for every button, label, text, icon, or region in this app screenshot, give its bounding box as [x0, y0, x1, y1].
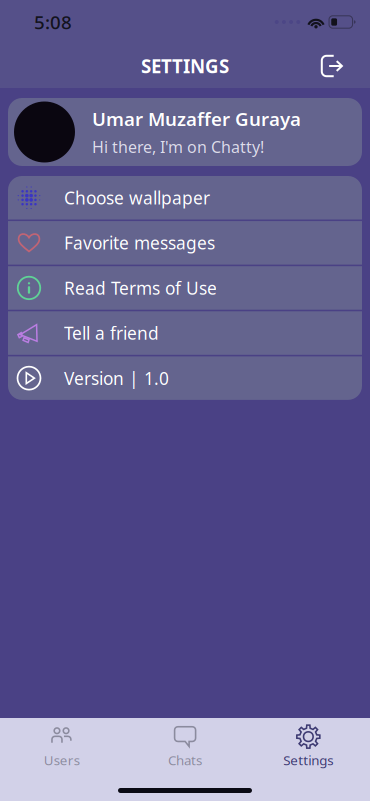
- staticText: SETTINGS: [141, 54, 229, 78]
- staticText: Umar Muzaffer Guraya: [92, 106, 301, 131]
- staticText: Favorite messages: [64, 231, 215, 254]
- staticText: Read Terms of Use: [64, 276, 217, 299]
- button[interactable]: Choose wallpaper: [8, 176, 362, 219]
- button[interactable]: Favorite messages: [8, 221, 362, 265]
- button[interactable]: Umar Muzaffer Guraya: [8, 98, 362, 166]
- button[interactable]: Version | 1.0: [8, 356, 362, 400]
- staticText: Choose wallpaper: [64, 186, 210, 209]
- button[interactable]: Tell a friend: [8, 311, 362, 355]
- staticText: Version | 1.0: [64, 367, 169, 390]
- staticText: Users: [44, 751, 80, 769]
- staticText: Chats: [168, 751, 202, 769]
- button[interactable]: Users: [0, 723, 123, 771]
- button[interactable]: Read Terms of Use: [8, 266, 362, 310]
- button[interactable]: Settings: [247, 723, 370, 771]
- staticText: Hi there, I'm on Chatty!: [92, 136, 264, 157]
- staticText: Tell a friend: [64, 321, 159, 344]
- staticText: 5:08: [34, 10, 72, 34]
- button[interactable]: Chats: [123, 723, 247, 771]
- button[interactable]: Log out: [310, 44, 354, 88]
- staticText: Settings: [283, 751, 333, 769]
